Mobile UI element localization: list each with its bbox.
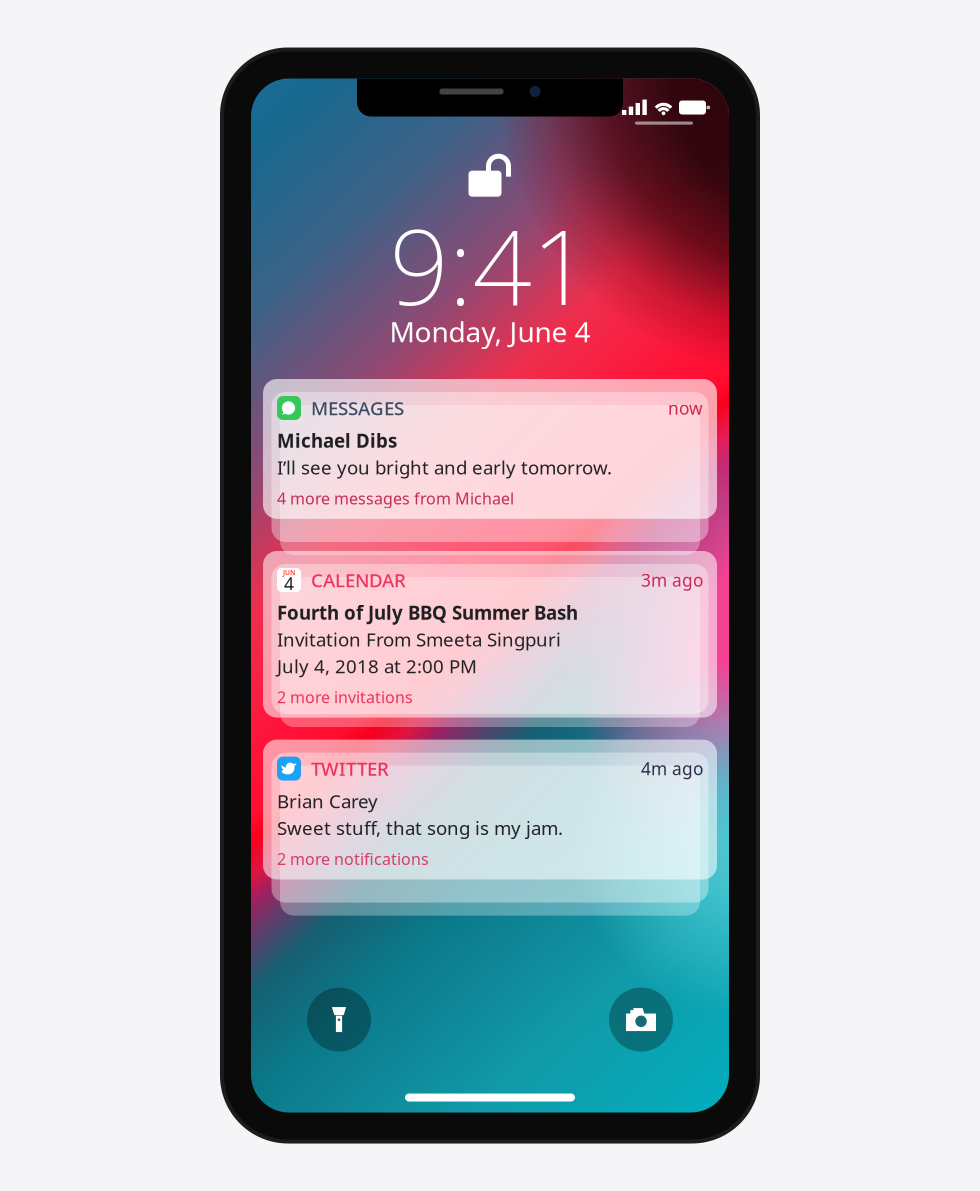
- staticText: Brian Carey: [277, 789, 378, 813]
- staticText: Michael Dibs: [277, 428, 397, 453]
- staticText: Fourth of July BBQ Summer Bash: [277, 600, 578, 625]
- staticText: 4m ago: [641, 757, 703, 780]
- button[interactable]: Flashlight: [307, 988, 371, 1052]
- button[interactable]: Camera: [609, 988, 673, 1052]
- staticText: JUN: [283, 568, 295, 577]
- staticText: Invitation From Smeeta Singpuri: [277, 627, 561, 652]
- staticText: 4 more messages from Michael: [277, 488, 514, 509]
- staticText: TWITTER: [311, 756, 389, 781]
- button[interactable]: TWITTER: [263, 740, 717, 879]
- staticText: 2 more invitations: [277, 686, 413, 708]
- staticText: MESSAGES: [311, 396, 404, 420]
- staticText: now: [668, 396, 703, 419]
- staticText: Monday, June 4: [389, 313, 590, 350]
- staticText: 3m ago: [641, 568, 703, 591]
- staticText: July 4, 2018 at 2:00 PM: [277, 654, 477, 678]
- button[interactable]: JUN: [263, 551, 717, 718]
- staticText: CALENDAR: [311, 568, 406, 592]
- staticText: Sweet stuff, that song is my jam.: [277, 815, 563, 840]
- staticText: 9:41: [389, 196, 590, 334]
- staticText: 2 more notifications: [277, 848, 429, 869]
- staticText: I’ll see you bright and early tomorrow.: [277, 455, 612, 480]
- staticText: 4: [284, 572, 294, 595]
- button[interactable]: MESSAGES: [263, 379, 717, 519]
